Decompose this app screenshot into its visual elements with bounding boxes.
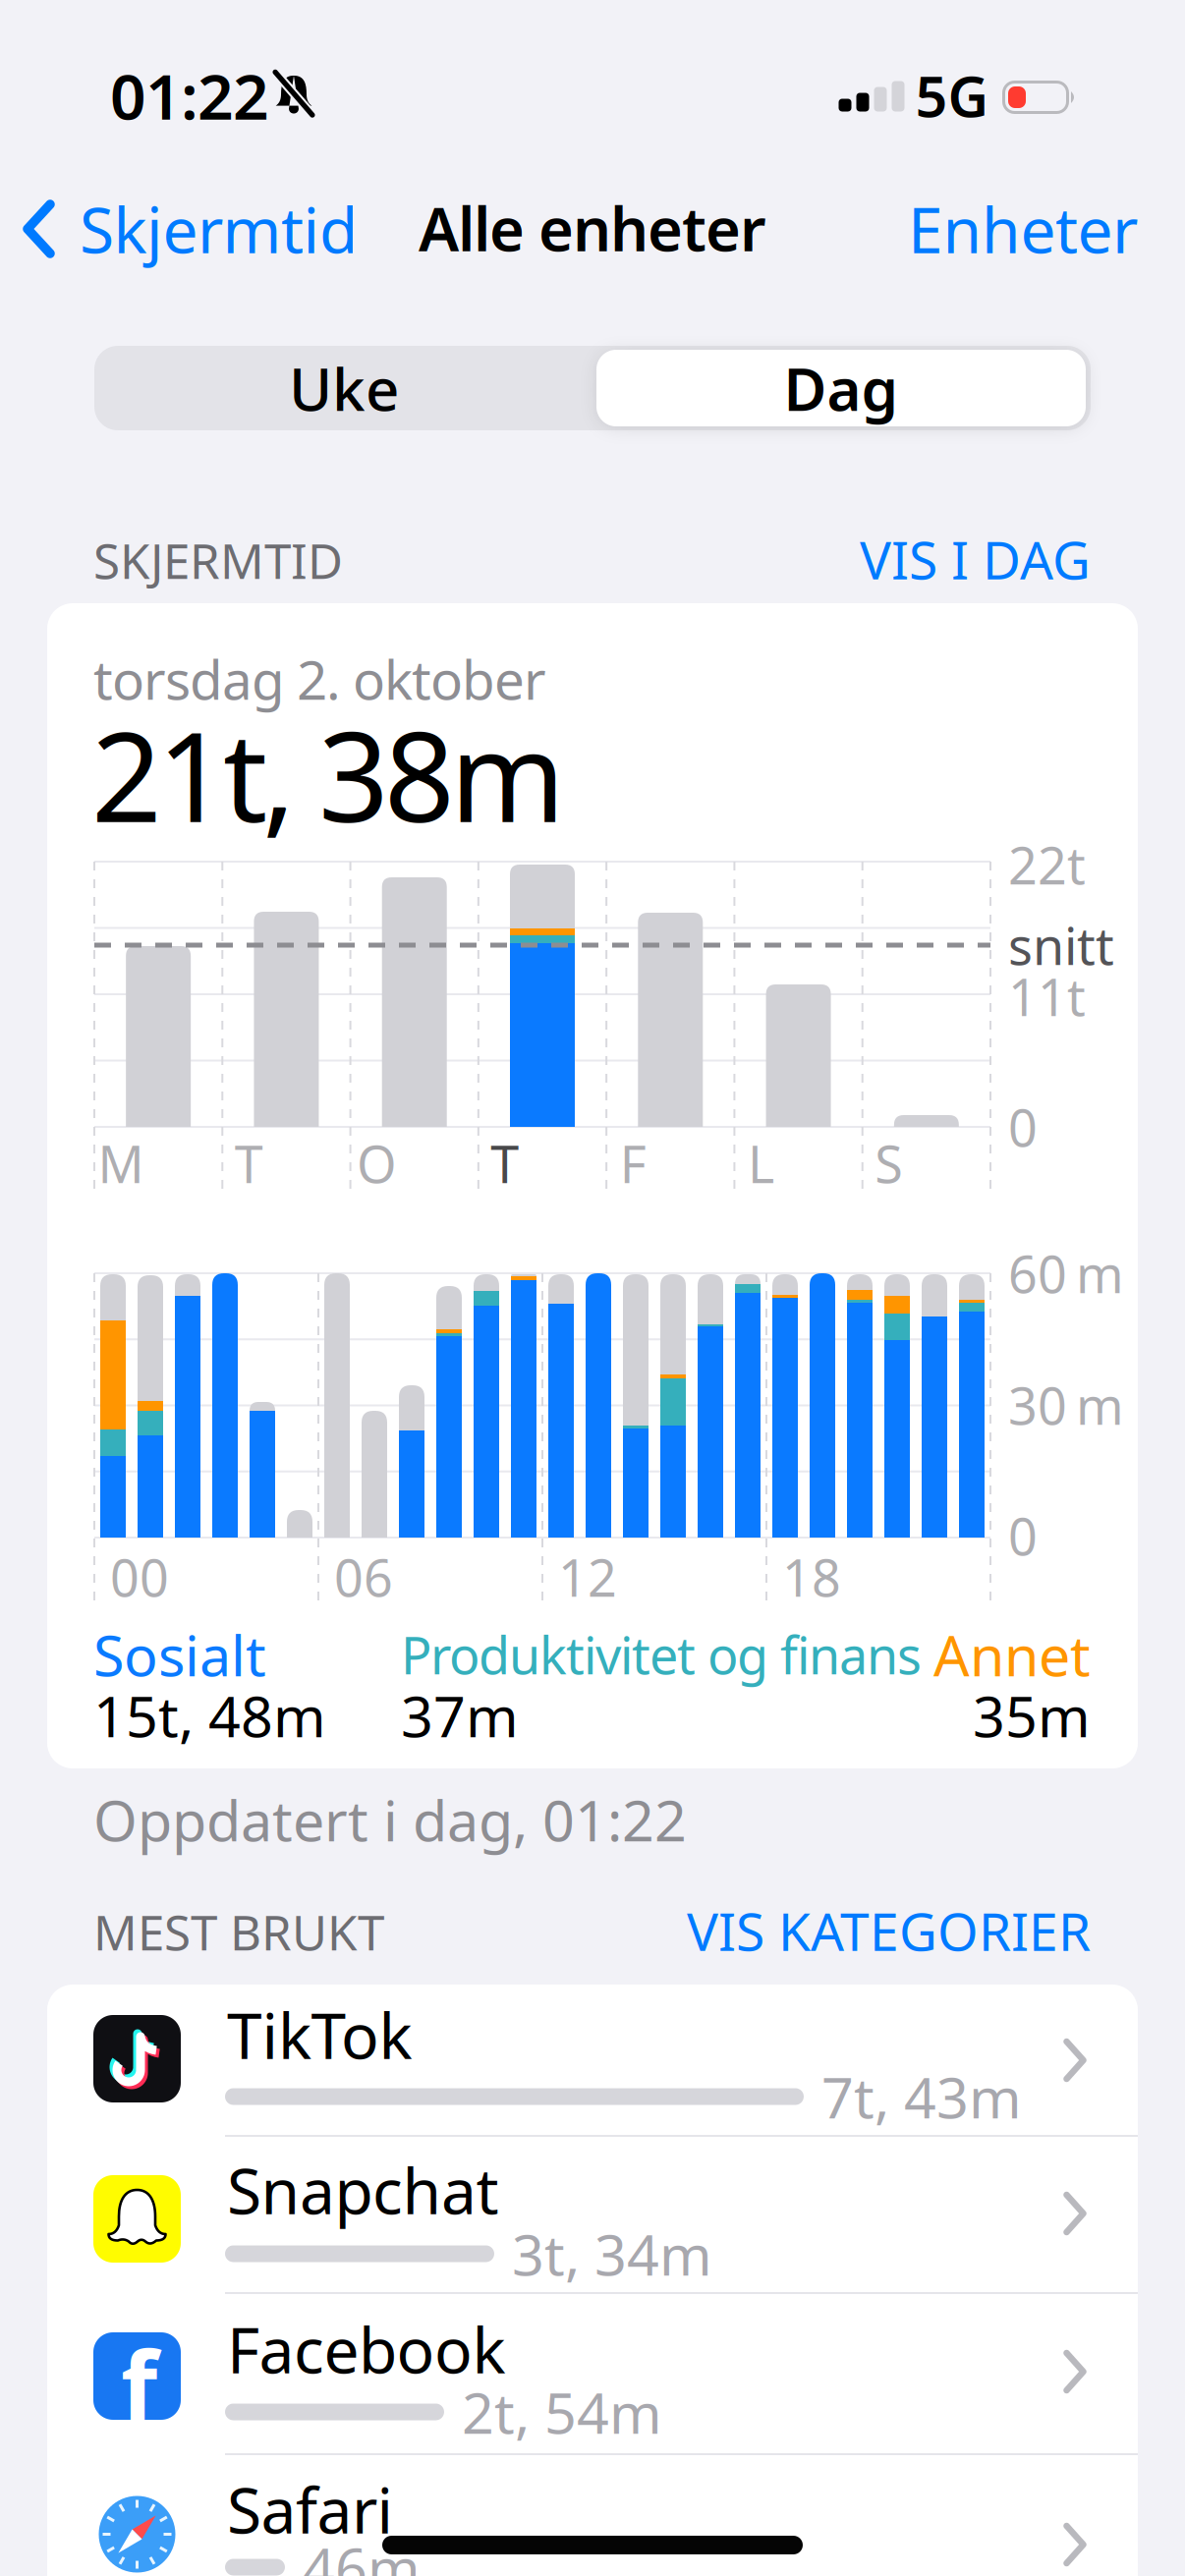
button[interactable]: f [47,2293,1138,2454]
staticText: 00 [110,1543,169,1611]
staticText: T [235,1129,263,1197]
staticText: 37m [401,1678,519,1753]
staticText: Facebook [227,2307,506,2391]
staticText: Annet [933,1617,1091,1692]
staticText: 0 [1008,1502,1038,1570]
staticText: VIS I DAG [860,524,1091,594]
staticText: VIS KATEGORIER [687,1896,1091,1965]
staticText: 18 [782,1543,841,1611]
staticText: 60 m [1008,1239,1124,1307]
button[interactable]: VIS KATEGORIER [658,1896,1091,1965]
staticText: f [121,2321,157,2447]
button[interactable]: VIS I DAG [796,524,1091,594]
staticText: Oppdatert i dag, 01:22 [93,1782,687,1857]
staticText: 7t, 43m [821,2059,1022,2134]
staticText: T [491,1129,519,1197]
staticText: 15t, 48m [93,1678,326,1753]
staticText: L [748,1129,774,1197]
staticText: 2t, 54m [462,2374,662,2449]
button[interactable]: Safari [47,2454,1138,2576]
button[interactable]: TikTok [47,1985,1138,2136]
staticText: TikTok [227,1993,412,2076]
button[interactable]: Snapchat [47,2136,1138,2293]
staticText: M [98,1129,144,1197]
staticText: SKJERMTID [93,528,343,592]
button[interactable]: Enheter [843,187,1138,271]
staticText: 5G [915,58,989,133]
staticText: snitt [1008,911,1114,979]
staticText: 46m [303,2530,421,2576]
staticText: 0 [1008,1093,1038,1161]
staticText: 35m [973,1678,1091,1753]
staticText: torsdag 2. oktober [93,643,546,715]
staticText: Alle enheter [419,188,766,268]
staticText: 11t [1008,962,1086,1030]
button[interactable]: Dag [595,346,1087,430]
staticText: MEST BRUKT [93,1899,384,1964]
button[interactable]: Skjermtid [25,198,477,259]
staticText: 22t [1008,831,1086,899]
staticText: Produktivitet og finans [401,1621,922,1688]
staticText: S [875,1129,903,1197]
staticText: F [620,1129,646,1197]
staticText: 12 [558,1543,617,1611]
staticText: Safari [227,2467,394,2551]
staticText: 3t, 34m [512,2216,712,2291]
staticText: 21t, 38m [91,692,565,856]
staticText: Enheter [908,187,1138,271]
button[interactable]: Uke [98,346,590,430]
staticText: Dag [784,349,899,427]
staticText: Skjermtid [80,187,358,271]
staticText: Sosialt [93,1617,266,1692]
staticText: O [357,1129,397,1197]
staticText: 30 m [1008,1371,1124,1439]
staticText: 01:22 [110,54,269,137]
staticText: Uke [289,349,399,427]
staticText: 06 [334,1543,393,1611]
staticText: Snapchat [227,2148,499,2232]
